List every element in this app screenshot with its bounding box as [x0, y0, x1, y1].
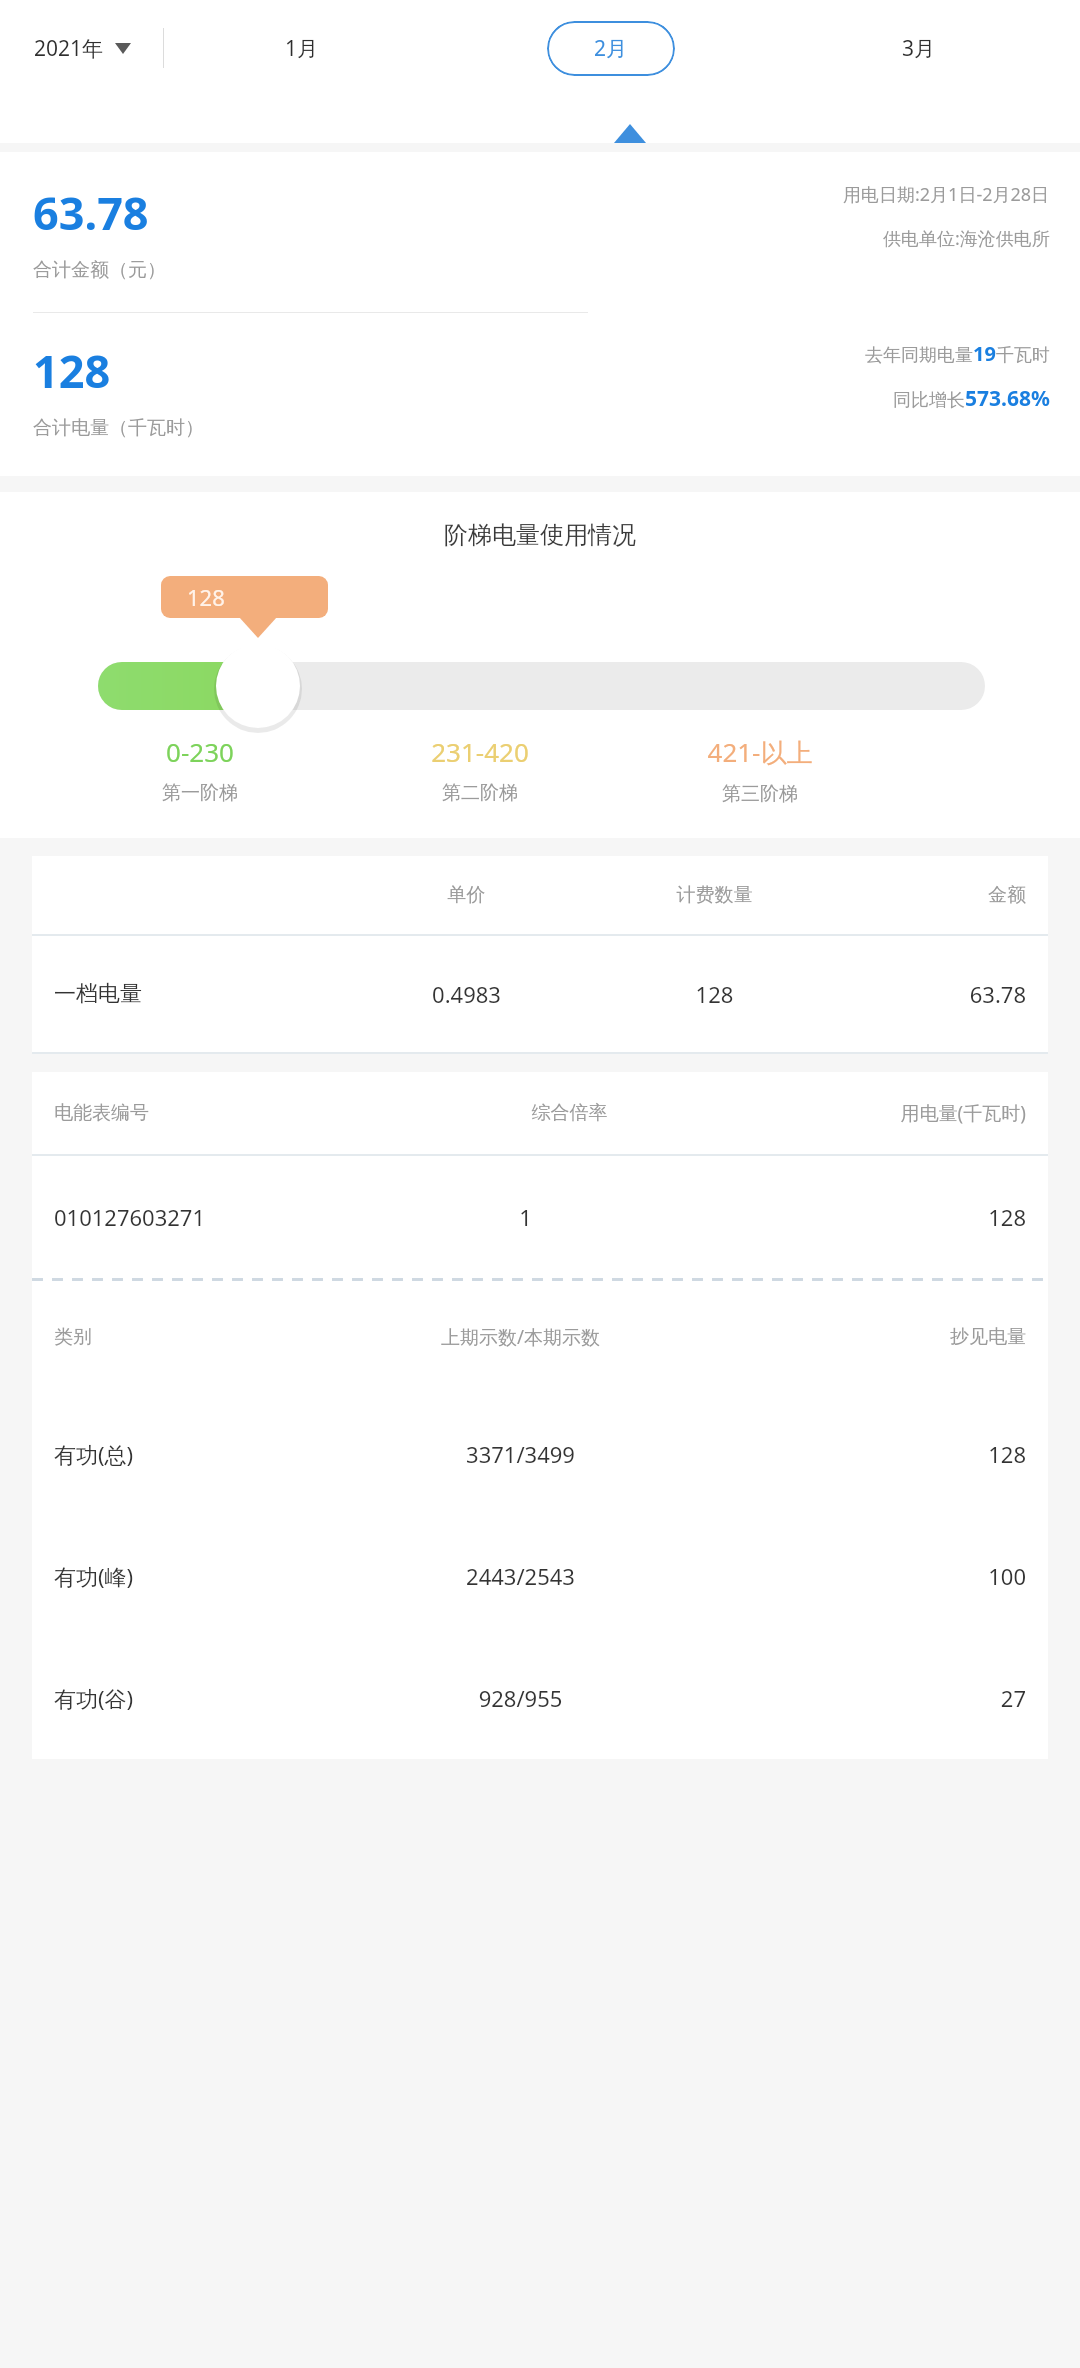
button[interactable]: 3月 — [782, 0, 1056, 96]
staticText: 第二阶梯 — [340, 781, 620, 805]
staticText: 128 — [715, 1439, 1026, 1469]
staticText: 用电量(千瓦时) — [725, 1100, 1026, 1126]
staticText: 综合倍率 — [414, 1101, 725, 1125]
staticText: 128 — [33, 340, 111, 401]
staticText: 电能表编号 — [54, 1101, 414, 1125]
staticText: 2443/2543 — [326, 1561, 715, 1591]
staticText: 63.78 — [33, 182, 149, 243]
staticText: 有功(谷) — [54, 1683, 326, 1713]
staticText: 3月 — [902, 34, 936, 63]
staticText: 3371/3499 — [326, 1439, 715, 1469]
staticText: 供电单位:海沧供电所 — [883, 226, 1050, 251]
staticText: 上期示数/本期示数 — [326, 1324, 715, 1350]
staticText: 2月 — [594, 34, 628, 63]
staticText: 单价 — [345, 883, 588, 907]
staticText: 阶梯电量使用情况 — [444, 520, 636, 550]
staticText: 第一阶梯 — [60, 781, 340, 805]
staticText: 128 — [725, 1202, 1026, 1232]
staticText: 421-以上 — [620, 734, 900, 770]
staticText: 抄见电量 — [715, 1325, 1026, 1349]
staticText: 63.78 — [841, 979, 1026, 1009]
staticText: 一档电量 — [54, 980, 345, 1008]
staticText: 合计金额（元） — [33, 258, 166, 282]
button[interactable]: 2021年 — [28, 24, 137, 73]
staticText: 100 — [715, 1561, 1026, 1591]
staticText: 928/955 — [326, 1683, 715, 1713]
staticText: 类别 — [54, 1325, 326, 1349]
staticText: 27 — [715, 1683, 1026, 1713]
staticText: 去年同期电量19千瓦时 — [865, 340, 1050, 367]
staticText: 0.4983 — [345, 979, 588, 1009]
staticText: 金额 — [841, 883, 1026, 907]
staticText: 010127603271 — [54, 1202, 326, 1232]
staticText: 0-230 — [60, 734, 340, 769]
button[interactable] — [0, 638, 1080, 734]
staticText: 128 — [588, 979, 841, 1009]
staticText: 2021年 — [34, 34, 104, 63]
staticText: 用电日期:2月1日-2月28日 — [843, 182, 1050, 207]
staticText: 合计电量（千瓦时） — [33, 416, 204, 440]
button[interactable]: 1月 — [164, 0, 439, 96]
staticText: 第三阶梯 — [620, 782, 900, 806]
staticText: 有功(总) — [54, 1439, 326, 1469]
staticText: 1月 — [285, 34, 319, 63]
staticText: 1 — [326, 1202, 725, 1232]
staticText: 有功(峰) — [54, 1561, 326, 1591]
staticText: 231-420 — [340, 734, 620, 769]
staticText: 128 — [187, 582, 225, 612]
staticText: 同比增长573.68% — [893, 384, 1050, 413]
staticText: 计费数量 — [588, 883, 841, 907]
button[interactable]: 2月 — [547, 21, 675, 76]
